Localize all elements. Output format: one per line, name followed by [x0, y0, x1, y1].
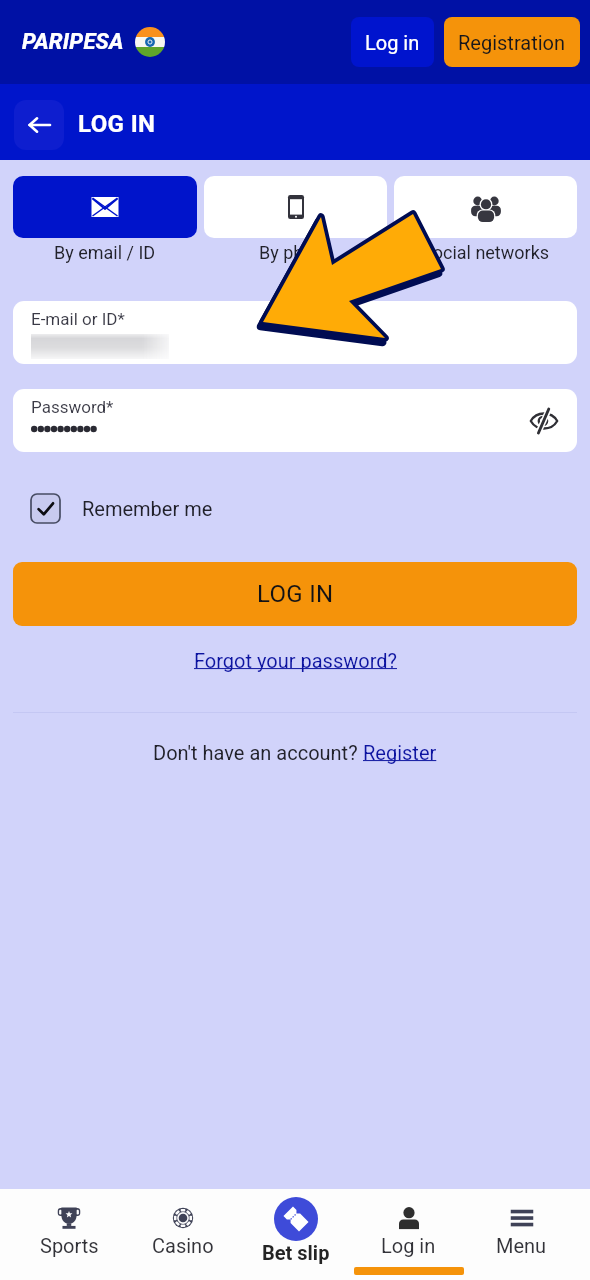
button[interactable]: Show password [522, 399, 566, 443]
staticText: LOG IN [78, 110, 156, 138]
staticText: Casino [152, 1234, 214, 1257]
staticText: PARIPESA [22, 29, 124, 55]
button[interactable]: Sports [12, 1189, 126, 1280]
staticText: Remember me [82, 497, 213, 520]
staticText: LOG IN [257, 580, 334, 608]
button[interactable]: Registration [444, 17, 580, 67]
staticText: Menu [496, 1234, 547, 1257]
button[interactable]: Menu [465, 1189, 578, 1280]
staticText: Log in [381, 1234, 436, 1257]
staticText: By email / ID [54, 242, 156, 263]
staticText: Social networks [422, 242, 550, 263]
button[interactable]: Back [14, 100, 64, 150]
staticText: Bet slip [262, 1241, 330, 1264]
staticText: Password* [31, 397, 114, 417]
staticText: Sports [40, 1234, 99, 1257]
button[interactable]: E-mail or ID* [13, 301, 577, 364]
staticText: Forgot your password? [194, 649, 397, 672]
staticText: Registration [458, 31, 566, 54]
button[interactable]: Log in [351, 17, 434, 67]
button[interactable] [13, 176, 197, 238]
button[interactable]: Bet slip [239, 1189, 352, 1280]
button[interactable]: Log in [352, 1189, 465, 1280]
button[interactable]: Password* [13, 389, 577, 452]
staticText: Don't have an account? [153, 741, 363, 764]
button[interactable]: LOG IN [13, 562, 577, 626]
button[interactable]: Casino [126, 1189, 239, 1280]
staticText: By phone [259, 242, 333, 263]
button[interactable] [394, 176, 577, 238]
button[interactable]: Register [363, 741, 437, 764]
staticText: Log in [365, 31, 420, 54]
button[interactable]: Remember me [31, 494, 60, 523]
staticText: E-mail or ID* [31, 309, 125, 329]
staticText: Register [363, 741, 437, 764]
button[interactable]: Forgot your password? [194, 649, 397, 672]
button[interactable] [204, 176, 387, 238]
